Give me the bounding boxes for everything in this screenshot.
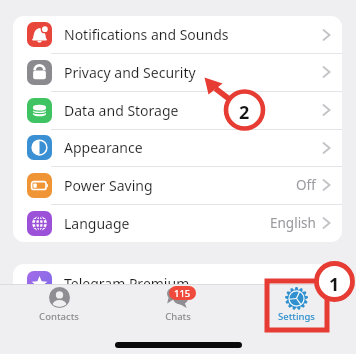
staticText: Data and Storage [64, 101, 179, 120]
staticText: 1 [329, 272, 340, 291]
button[interactable]: Settings [237, 284, 356, 329]
staticText: Privacy and Security [64, 63, 196, 82]
button[interactable]: Language [13, 204, 342, 242]
staticText: Language [64, 214, 130, 233]
button[interactable]: Telegram Premium [13, 264, 342, 304]
staticText: Telegram Premium [64, 274, 190, 293]
button[interactable]: Notifications and Sounds [13, 16, 342, 53]
button[interactable]: Contacts [0, 284, 118, 329]
staticText: Appearance [64, 138, 143, 157]
staticText: 2 [239, 100, 250, 119]
button[interactable]: Chats [118, 284, 237, 329]
staticText: Contacts [39, 310, 79, 323]
staticText: Settings [278, 310, 315, 323]
button[interactable]: Data and Storage [13, 91, 342, 129]
button[interactable]: Privacy and Security [13, 53, 342, 91]
staticText: 115 [174, 287, 191, 300]
staticText: Power Saving [64, 176, 153, 195]
staticText: Off [296, 176, 316, 194]
staticText: Chats [165, 310, 191, 323]
button[interactable]: Appearance [13, 129, 342, 166]
staticText: Notifications and Sounds [64, 25, 229, 44]
button[interactable]: Power Saving [13, 166, 342, 204]
staticText: English [270, 214, 316, 232]
